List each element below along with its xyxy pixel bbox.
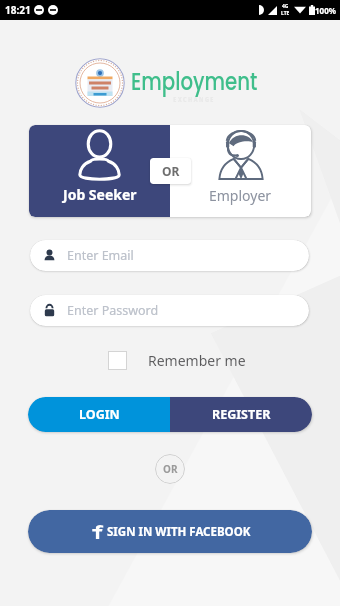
button[interactable]: Enter Email — [30, 240, 309, 271]
button[interactable]: Employer — [170, 125, 311, 217]
staticText: OR — [162, 163, 180, 179]
staticText: E X C H A N G E — [131, 95, 256, 105]
staticText: 18:21 — [5, 3, 31, 17]
staticText: LTE — [281, 10, 290, 17]
staticText: OR — [163, 462, 178, 476]
staticText: 4G — [282, 3, 289, 10]
button[interactable]: SIGN IN WITH FACEBOOK — [28, 510, 312, 553]
button[interactable]: OR — [155, 454, 185, 484]
staticText: Employer — [209, 186, 272, 205]
staticText: Employment — [131, 64, 258, 99]
staticText: LOGIN — [79, 406, 120, 423]
button[interactable]: Enter Password — [30, 295, 309, 326]
staticText: Remember me — [148, 351, 246, 370]
staticText: 100% — [315, 5, 336, 16]
staticText: SIGN IN WITH FACEBOOK — [107, 524, 251, 540]
staticText: Enter Email — [67, 247, 134, 264]
button[interactable]: REGISTER — [170, 397, 312, 432]
staticText: Enter Password — [67, 302, 159, 319]
button[interactable]: LOGIN — [28, 397, 170, 432]
button[interactable]: Job Seeker — [29, 125, 170, 217]
button[interactable]: Remember me — [108, 351, 246, 370]
staticText: REGISTER — [212, 406, 271, 423]
staticText: Job Seeker — [63, 185, 137, 204]
